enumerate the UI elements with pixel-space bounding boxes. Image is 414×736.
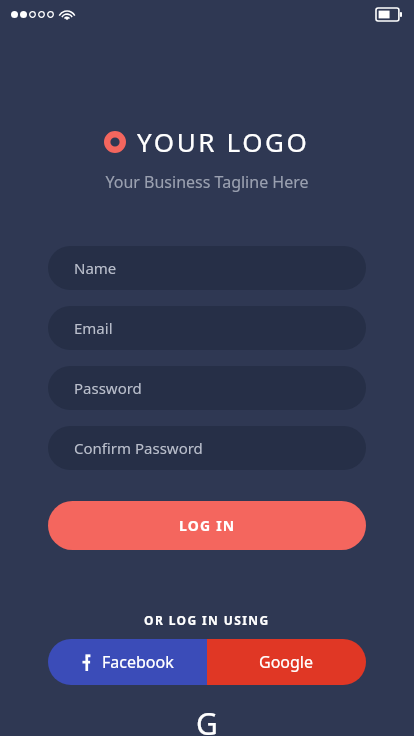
button[interactable]: Email bbox=[48, 306, 366, 350]
staticText: Name bbox=[74, 258, 117, 278]
staticText: G bbox=[196, 703, 218, 736]
staticText: Google bbox=[259, 651, 314, 673]
staticText: Your Business Tagline Here bbox=[105, 171, 309, 193]
button[interactable]: Facebook bbox=[48, 639, 207, 685]
button[interactable]: LOG IN bbox=[48, 501, 366, 550]
staticText: Facebook bbox=[102, 651, 174, 673]
staticText: Confirm Password bbox=[74, 438, 203, 458]
button[interactable]: Name bbox=[48, 246, 366, 290]
button[interactable]: Google bbox=[207, 639, 366, 685]
staticText: LOG IN bbox=[179, 516, 236, 535]
button[interactable]: Password bbox=[48, 366, 366, 410]
button[interactable]: Confirm Password bbox=[48, 426, 366, 470]
staticText: YOUR LOGO bbox=[137, 124, 310, 159]
staticText: OR LOG IN USING bbox=[144, 612, 270, 628]
staticText: Email bbox=[74, 318, 113, 338]
staticText: Password bbox=[74, 378, 142, 398]
